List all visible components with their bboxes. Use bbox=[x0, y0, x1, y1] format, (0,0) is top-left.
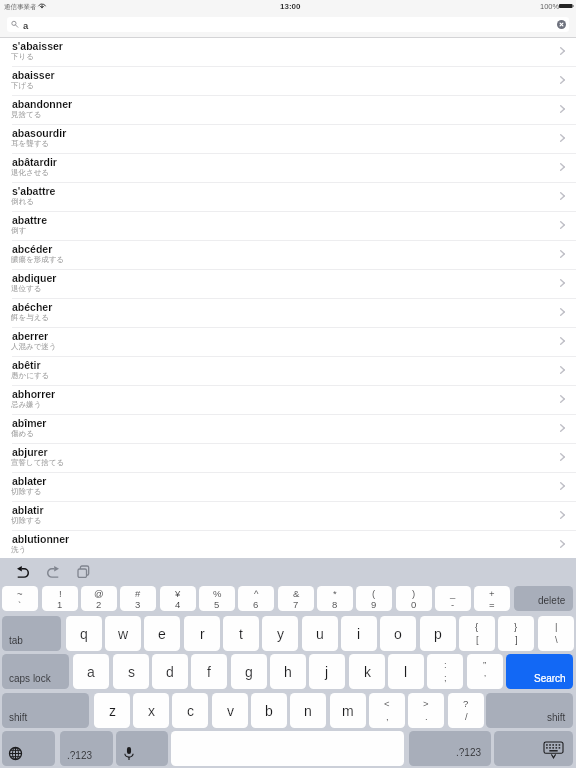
button[interactable]: * bbox=[317, 586, 353, 611]
button[interactable]: u bbox=[302, 616, 338, 651]
staticText: . bbox=[425, 711, 428, 722]
button[interactable]: ablater bbox=[0, 473, 576, 502]
staticText: ? bbox=[463, 698, 469, 709]
button[interactable]: ^ bbox=[238, 586, 274, 611]
button[interactable]: e bbox=[144, 616, 180, 651]
button[interactable]: aberrer bbox=[0, 328, 576, 357]
button[interactable]: _ bbox=[435, 586, 471, 611]
staticText: Search bbox=[534, 673, 566, 684]
button[interactable]: shift bbox=[486, 693, 573, 728]
button[interactable]: abasourdir bbox=[0, 125, 576, 154]
button[interactable]: abêtir bbox=[0, 357, 576, 386]
button[interactable]: l bbox=[388, 654, 424, 689]
button[interactable]: delete bbox=[514, 586, 573, 611]
button[interactable]: s'abattre bbox=[0, 183, 576, 212]
button[interactable]: z bbox=[94, 693, 130, 728]
button[interactable]: g bbox=[231, 654, 267, 689]
button[interactable]: c bbox=[172, 693, 208, 728]
button[interactable]: Hide keyboard bbox=[494, 731, 573, 766]
button[interactable]: < bbox=[369, 693, 405, 728]
button[interactable]: abcéder bbox=[0, 241, 576, 270]
button[interactable]: # bbox=[120, 586, 156, 611]
button[interactable]: f bbox=[191, 654, 227, 689]
button[interactable]: caps lock bbox=[2, 654, 69, 689]
button[interactable]: .?123 bbox=[409, 731, 491, 766]
button[interactable]: abdiquer bbox=[0, 270, 576, 299]
staticText: 洗う bbox=[11, 545, 27, 554]
button[interactable]: Paste bbox=[73, 562, 95, 582]
button[interactable]: b bbox=[251, 693, 287, 728]
button[interactable]: Undo bbox=[12, 562, 34, 582]
button[interactable]: s'abaisser bbox=[0, 38, 576, 67]
button[interactable]: + bbox=[474, 586, 510, 611]
staticText: n bbox=[304, 703, 312, 719]
button[interactable]: n bbox=[290, 693, 326, 728]
staticText: tab bbox=[9, 635, 23, 646]
button[interactable]: Redo bbox=[42, 562, 64, 582]
staticText: d bbox=[166, 664, 174, 680]
button[interactable]: ! bbox=[42, 586, 78, 611]
staticText: 膿瘍を形成する bbox=[11, 255, 65, 264]
button[interactable]: ablatir bbox=[0, 502, 576, 531]
button[interactable]: tab bbox=[2, 616, 61, 651]
button[interactable]: a bbox=[73, 654, 109, 689]
button[interactable]: } bbox=[498, 616, 534, 651]
button[interactable]: abâtardir bbox=[0, 154, 576, 183]
button[interactable]: ” bbox=[467, 654, 503, 689]
button[interactable]: > bbox=[408, 693, 444, 728]
button[interactable]: abhorrer bbox=[0, 386, 576, 415]
button[interactable]: y bbox=[262, 616, 298, 651]
button[interactable]: .?123 bbox=[60, 731, 113, 766]
staticText: 9 bbox=[371, 599, 377, 610]
button[interactable]: ~ bbox=[2, 586, 38, 611]
button[interactable]: j bbox=[309, 654, 345, 689]
staticText: t bbox=[239, 626, 243, 642]
staticText: delete bbox=[538, 595, 566, 606]
button[interactable]: abîmer bbox=[0, 415, 576, 444]
button[interactable]: Next keyboard bbox=[2, 731, 55, 766]
button[interactable]: a bbox=[7, 17, 569, 32]
staticText: y bbox=[277, 626, 284, 642]
staticText: abêtir bbox=[12, 359, 41, 371]
staticText: 忌み嫌う bbox=[11, 400, 42, 409]
staticText: abandonner bbox=[12, 98, 73, 110]
button[interactable]: x bbox=[133, 693, 169, 728]
button[interactable]: v bbox=[212, 693, 248, 728]
button[interactable]: @ bbox=[81, 586, 117, 611]
button[interactable]: w bbox=[105, 616, 141, 651]
button[interactable]: ? bbox=[448, 693, 484, 728]
button[interactable]: Clear text bbox=[557, 20, 566, 29]
button[interactable]: d bbox=[152, 654, 188, 689]
button[interactable]: : bbox=[427, 654, 463, 689]
button[interactable]: & bbox=[278, 586, 314, 611]
button[interactable]: ) bbox=[396, 586, 432, 611]
button[interactable]: abjurer bbox=[0, 444, 576, 473]
button[interactable]: t bbox=[223, 616, 259, 651]
button[interactable]: h bbox=[270, 654, 306, 689]
button[interactable]: p bbox=[420, 616, 456, 651]
button[interactable]: i bbox=[341, 616, 377, 651]
button[interactable]: Search bbox=[506, 654, 573, 689]
button[interactable]: q bbox=[66, 616, 102, 651]
button[interactable]: o bbox=[380, 616, 416, 651]
button[interactable]: shift bbox=[2, 693, 89, 728]
button[interactable]: abécher bbox=[0, 299, 576, 328]
button[interactable]: ablutionner bbox=[0, 531, 576, 560]
button[interactable]: ¥ bbox=[160, 586, 196, 611]
button[interactable]: Dictation bbox=[116, 731, 168, 766]
button[interactable]: % bbox=[199, 586, 235, 611]
button[interactable]: ( bbox=[356, 586, 392, 611]
button[interactable]: k bbox=[349, 654, 385, 689]
button[interactable]: m bbox=[330, 693, 366, 728]
button[interactable]: abattre bbox=[0, 212, 576, 241]
button[interactable]: | bbox=[538, 616, 574, 651]
button[interactable]: { bbox=[459, 616, 495, 651]
button[interactable]: abaisser bbox=[0, 67, 576, 96]
staticText: j bbox=[325, 664, 329, 680]
button[interactable]: s bbox=[113, 654, 149, 689]
button[interactable]: r bbox=[184, 616, 220, 651]
button[interactable]: abandonner bbox=[0, 96, 576, 125]
staticText: 6 bbox=[253, 599, 259, 610]
staticText: .?123 bbox=[67, 750, 93, 761]
